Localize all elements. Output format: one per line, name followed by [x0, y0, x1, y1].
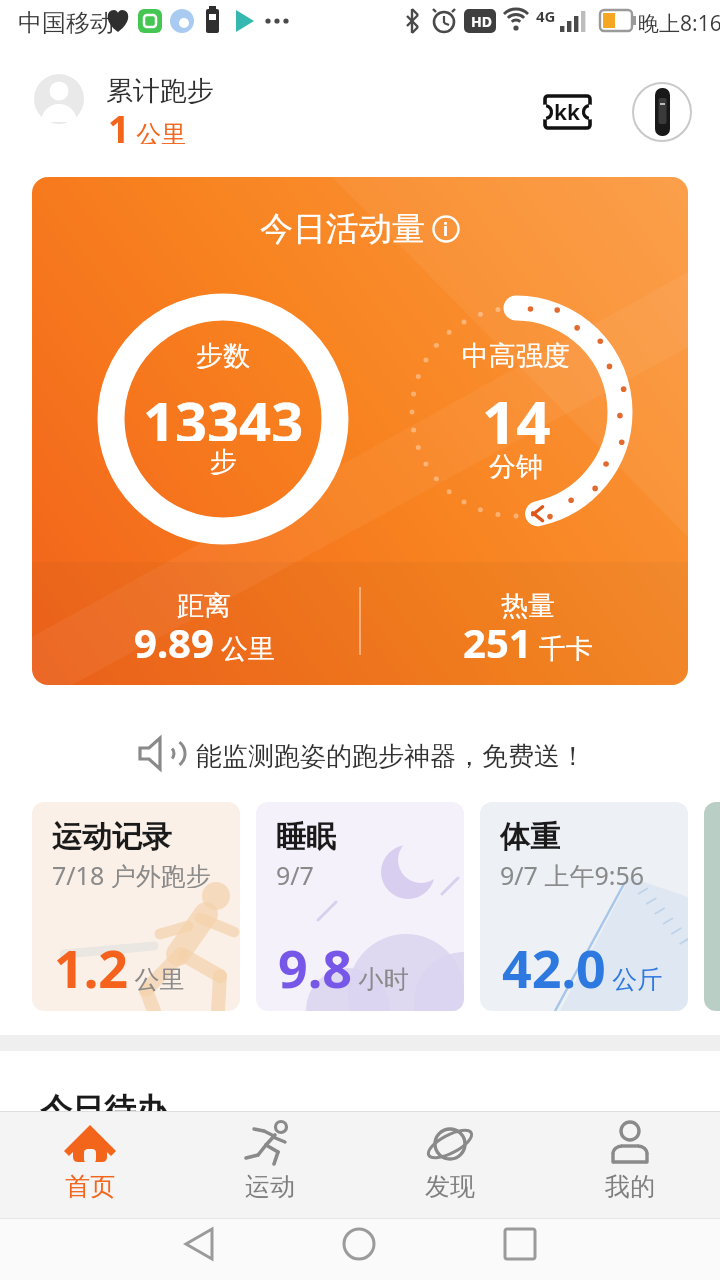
button[interactable] [0, 1112, 180, 1218]
button[interactable] [120, 730, 600, 782]
button[interactable] [460, 1220, 560, 1278]
staticText: 首页 [65, 1171, 115, 1199]
staticText: 今日待办 [40, 1090, 168, 1130]
staticText: 9/7 上午9:56 [500, 858, 645, 888]
staticText: 42.0 公斤 [502, 932, 663, 998]
button[interactable] [540, 1112, 720, 1218]
staticText: 晚上8:16 [638, 9, 720, 35]
button[interactable]: 运动记录 [32, 802, 240, 1011]
staticText: 今日活动量 [260, 208, 425, 250]
button[interactable]: 睡眠 [256, 802, 464, 1011]
staticText: 13343 [143, 383, 304, 441]
button[interactable] [540, 90, 594, 134]
staticText: 运动 [245, 1171, 295, 1199]
staticText: 累计跑步 [106, 74, 214, 104]
button[interactable] [633, 83, 691, 141]
button[interactable] [310, 1220, 410, 1278]
staticText: 我的 [605, 1171, 655, 1199]
staticText: 运动记录 [52, 818, 172, 854]
staticText: 分钟 [489, 450, 543, 480]
staticText: 发现 [425, 1171, 475, 1199]
staticText: 步 [210, 445, 237, 475]
staticText: HD [471, 12, 492, 31]
staticText: i [443, 218, 449, 241]
staticText: 1 公里 [108, 102, 187, 144]
staticText: 热量 [501, 589, 555, 619]
staticText: 能监测跑姿的跑步神器，免费送！ [196, 740, 586, 772]
staticText: 1.2 公里 [54, 932, 185, 998]
button[interactable] [360, 1112, 540, 1218]
staticText: 4G [536, 6, 556, 24]
staticText: 9/7 [276, 858, 314, 888]
staticText: 距离 [177, 589, 231, 619]
staticText: kk [554, 98, 581, 127]
button[interactable]: 今日活动量 [32, 177, 688, 685]
staticText: 251 千卡 [463, 615, 593, 667]
staticText: 体重 [500, 818, 560, 854]
staticText: 中国移动 [18, 8, 114, 36]
staticText: 9.8 小时 [278, 932, 409, 998]
button[interactable] [160, 1220, 260, 1278]
staticText: 9.89 公里 [134, 615, 275, 667]
staticText: 睡眠 [276, 818, 336, 854]
button[interactable] [20, 64, 300, 144]
staticText: 步数 [196, 339, 250, 369]
staticText: 14 [482, 380, 551, 444]
staticText: 7/18 户外跑步 [52, 858, 211, 888]
staticText: 中高强度 [462, 339, 570, 369]
button[interactable] [180, 1112, 360, 1218]
button[interactable]: 体重 [480, 802, 688, 1011]
